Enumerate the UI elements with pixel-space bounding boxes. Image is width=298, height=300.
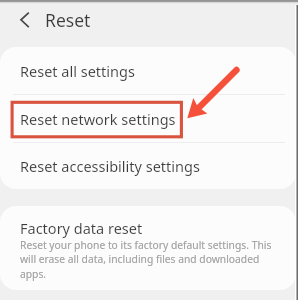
staticText: Reset accessibility settings [20, 156, 200, 176]
button[interactable]: Factory data reset [0, 206, 296, 290]
staticText: Reset network settings [20, 109, 176, 129]
button[interactable]: Reset network settings [0, 95, 296, 142]
staticText: Reset your phone to its factory default … [20, 238, 272, 281]
button[interactable]: Reset all settings [0, 47, 296, 94]
button[interactable]: Reset accessibility settings [0, 143, 296, 189]
button[interactable]: Back [8, 4, 40, 36]
staticText: Factory data reset [20, 218, 143, 238]
staticText: Reset [45, 8, 91, 32]
staticText: Reset all settings [20, 61, 135, 81]
